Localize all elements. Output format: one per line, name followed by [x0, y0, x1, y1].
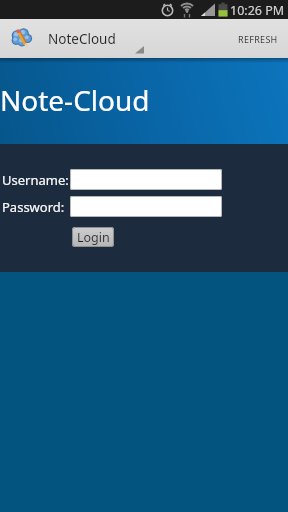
staticText: REFRESH	[238, 33, 278, 45]
staticText: Note-Cloud	[0, 81, 150, 119]
staticText: Username:	[2, 171, 69, 189]
staticText: Password:	[2, 198, 65, 216]
button[interactable]	[70, 196, 222, 217]
button[interactable]	[70, 169, 222, 190]
staticText: Login	[77, 229, 110, 246]
staticText: NoteCloud	[48, 30, 116, 48]
button[interactable]: Login	[72, 227, 114, 247]
button[interactable]: REFRESH	[228, 19, 288, 58]
button[interactable]: NoteCloud	[0, 19, 140, 58]
staticText: 10:26 PM	[230, 2, 285, 19]
